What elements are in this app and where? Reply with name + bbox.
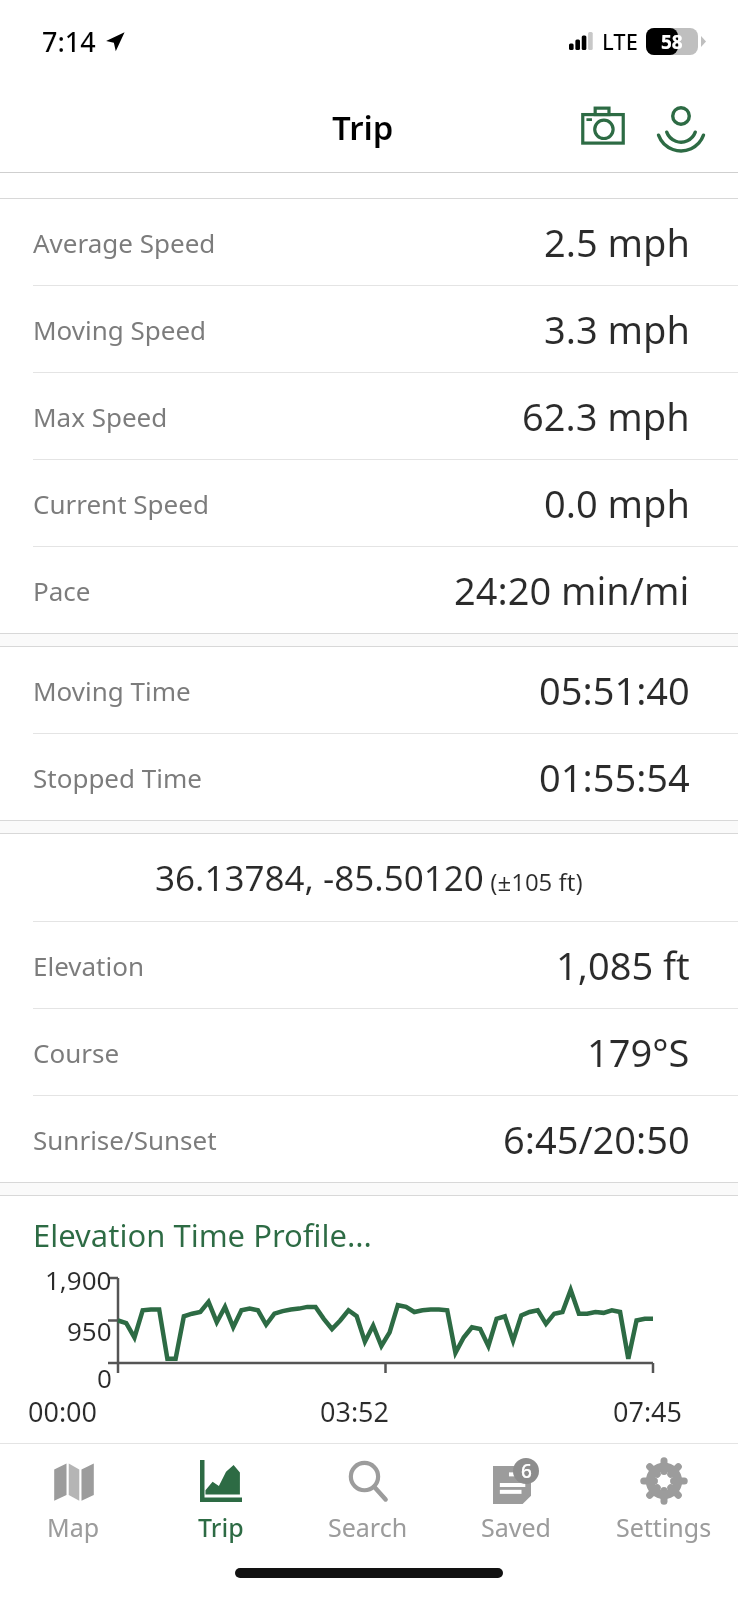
staticText: (±105 ft) — [484, 865, 583, 898]
button[interactable]: Moving Time — [0, 647, 738, 733]
staticText: Current Speed — [33, 486, 209, 521]
staticText: Trip — [198, 1510, 244, 1544]
staticText: 00:00 — [28, 1393, 98, 1430]
staticText: Stopped Time — [33, 760, 202, 795]
staticText: Saved — [481, 1510, 551, 1544]
staticText: Settings — [616, 1510, 712, 1544]
staticText: 2.5 mph — [544, 216, 690, 268]
staticText: 6:45/20:50 — [503, 1113, 690, 1165]
staticText: Elevation — [33, 948, 144, 983]
button[interactable]: Camera — [570, 94, 636, 160]
staticText: 01:55:54 — [539, 751, 690, 803]
staticText: Average Speed — [33, 225, 216, 260]
staticText: Elevation Time Profile... — [33, 1214, 372, 1256]
staticText: Sunrise/Sunset — [33, 1122, 217, 1157]
staticText: Trip — [332, 105, 394, 150]
staticText: 1,085 ft — [556, 939, 690, 991]
button[interactable]: Average Speed — [0, 199, 738, 285]
staticText: 24:20 min/mi — [454, 564, 690, 616]
button[interactable]: 36.13784, -85.50120 — [0, 834, 738, 921]
button[interactable]: Location — [648, 94, 714, 160]
staticText: 7:14 — [42, 23, 96, 60]
staticText: Max Speed — [33, 399, 168, 434]
staticText: 05:51:40 — [539, 664, 690, 716]
staticText: 03:52 — [320, 1393, 390, 1430]
staticText: 0.0 mph — [544, 477, 690, 529]
button[interactable]: Settings — [590, 1444, 738, 1554]
staticText: 179°S — [587, 1026, 690, 1078]
button[interactable]: Search — [294, 1444, 442, 1554]
button[interactable]: 6 — [442, 1444, 590, 1554]
button[interactable]: Current Speed — [0, 460, 738, 546]
staticText: Search — [328, 1510, 408, 1544]
staticText: 62.3 mph — [522, 390, 690, 442]
staticText: Moving Time — [33, 673, 191, 708]
staticText: Pace — [33, 573, 91, 608]
staticText: 950 — [67, 1313, 112, 1348]
button[interactable]: Trip — [147, 1444, 294, 1554]
staticText: 1,900 — [45, 1262, 112, 1297]
staticText: LTE — [602, 26, 638, 56]
button[interactable]: Stopped Time — [0, 734, 738, 820]
staticText: 6 — [521, 1458, 532, 1484]
staticText: Course — [33, 1035, 120, 1070]
button[interactable]: Max Speed — [0, 373, 738, 459]
staticText: Moving Speed — [33, 312, 207, 347]
button[interactable]: Map — [0, 1444, 147, 1554]
staticText: 3.3 mph — [544, 303, 690, 355]
staticText: 36.13784, -85.50120 — [155, 854, 484, 902]
button[interactable]: Course — [0, 1009, 738, 1095]
button[interactable]: Elevation — [0, 922, 738, 1008]
button[interactable]: Pace — [0, 547, 738, 633]
staticText: 07:45 — [613, 1393, 683, 1430]
staticText: 0 — [97, 1360, 112, 1395]
button[interactable]: Elevation Time Profile... — [0, 1196, 738, 1430]
staticText: Map — [47, 1510, 100, 1544]
button[interactable]: Moving Speed — [0, 286, 738, 372]
button[interactable]: Sunrise/Sunset — [0, 1096, 738, 1182]
staticText: 58 — [661, 29, 683, 55]
